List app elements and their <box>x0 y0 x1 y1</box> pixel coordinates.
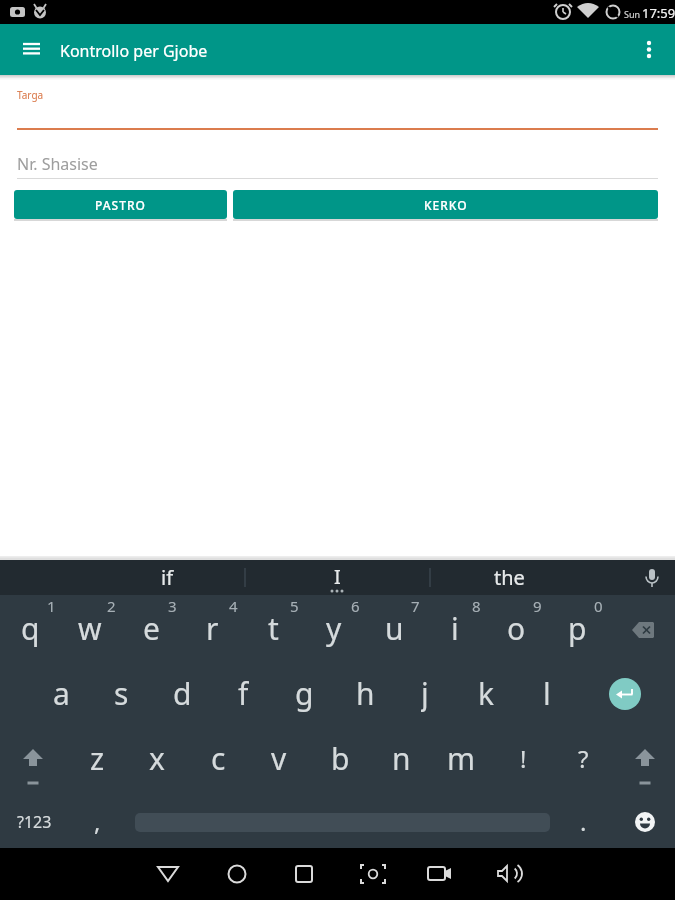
staticText: z <box>90 738 105 778</box>
staticText: Targa <box>17 88 44 102</box>
staticText: 0 <box>594 596 603 613</box>
staticText: Nr. Shasise <box>17 153 98 175</box>
staticText: o <box>507 608 526 648</box>
staticText: k <box>478 673 495 713</box>
staticText: h <box>356 673 375 713</box>
staticText: y <box>326 608 342 648</box>
staticText: ?123 <box>17 811 52 833</box>
staticText: t <box>268 608 279 648</box>
staticText: PASTRO <box>95 197 146 213</box>
staticText: , <box>94 805 101 838</box>
staticText: u <box>385 608 404 648</box>
staticText: m <box>447 738 476 778</box>
staticText: i <box>451 608 459 648</box>
staticText: 2 <box>107 596 116 613</box>
staticText: g <box>295 673 314 713</box>
staticText: p <box>568 608 587 648</box>
staticText: x <box>149 738 165 778</box>
staticText: the <box>494 564 525 591</box>
staticText: 17:59 <box>642 4 675 22</box>
staticText: 3 <box>168 596 177 613</box>
staticText: d <box>173 673 192 713</box>
staticText: Sun <box>624 8 641 20</box>
staticText: l <box>543 673 551 713</box>
staticText: r <box>206 608 219 648</box>
staticText: s <box>114 673 129 713</box>
staticText: Kontrollo per Gjobe <box>60 40 208 62</box>
staticText: b <box>331 738 350 778</box>
staticText: a <box>53 673 70 713</box>
staticText: v <box>271 738 287 778</box>
staticText: n <box>392 738 411 778</box>
staticText: e <box>143 608 160 648</box>
staticText: 1 <box>47 596 56 613</box>
staticText: if <box>161 564 174 591</box>
staticText: 8 <box>472 596 481 613</box>
staticText: . <box>580 805 587 838</box>
staticText: w <box>78 608 102 648</box>
staticText: j <box>421 673 429 713</box>
staticText: KERKO <box>424 197 468 213</box>
staticText: 5 <box>290 596 299 613</box>
staticText: c <box>211 738 226 778</box>
staticText: q <box>21 608 40 648</box>
staticText: 9 <box>533 596 542 613</box>
staticText: 7 <box>411 596 420 613</box>
staticText: ! <box>520 742 527 775</box>
staticText: f <box>238 673 249 713</box>
staticText: 4 <box>229 596 238 613</box>
staticText: 6 <box>351 596 360 613</box>
staticText: I <box>334 563 341 590</box>
staticText: ? <box>578 742 589 775</box>
